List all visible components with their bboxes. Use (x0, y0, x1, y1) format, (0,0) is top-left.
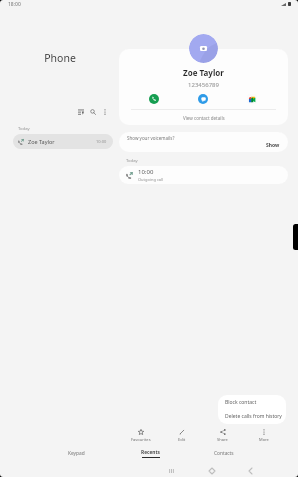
staticText: 18:00 (8, 1, 21, 8)
button[interactable]: Search (87, 106, 99, 118)
button[interactable]: Call (149, 94, 159, 104)
staticText: 10:00 (138, 168, 154, 176)
staticText: Outgoing call (138, 177, 164, 182)
staticText: Today (18, 126, 30, 132)
button[interactable]: More (243, 427, 284, 441)
button[interactable]: Back (241, 461, 260, 477)
button[interactable]: Contacts (187, 445, 260, 459)
button[interactable]: Zoe Taylor (13, 134, 113, 149)
button[interactable]: 10:00 (119, 166, 288, 184)
button[interactable]: Keypad (39, 445, 113, 459)
staticText: 10:00 (96, 139, 107, 144)
button[interactable]: More options (99, 106, 111, 118)
staticText: Today (126, 158, 138, 164)
button[interactable]: Video call (247, 94, 257, 104)
staticText: Block contact (225, 399, 257, 406)
staticText: Keypad (68, 450, 85, 457)
button[interactable]: Show (266, 142, 288, 152)
button[interactable]: Recents (113, 445, 187, 459)
staticText: Show your voicemails? (127, 135, 175, 141)
staticText: Contacts (214, 450, 234, 457)
staticText: 123456789 (119, 81, 288, 89)
staticText: Favourites (131, 437, 151, 441)
button[interactable]: Edit (161, 427, 202, 441)
button[interactable]: Block contact (218, 395, 286, 409)
button[interactable]: Delete calls from history (218, 409, 286, 423)
staticText: Edit (178, 437, 186, 441)
staticText: Recents (141, 449, 160, 456)
button[interactable]: View contact details (119, 110, 288, 125)
staticText: Share (217, 437, 228, 441)
button[interactable]: Share (202, 427, 243, 441)
button[interactable]: Favourites (120, 427, 161, 441)
staticText: Phone (1, 51, 119, 65)
staticText: Show (266, 142, 280, 149)
staticText: Zoe Taylor (28, 138, 55, 145)
button[interactable]: Home (202, 461, 221, 477)
staticText: Zoe Taylor (119, 67, 288, 78)
staticText: More (259, 437, 269, 441)
button[interactable]: Sort (75, 106, 87, 118)
button[interactable]: Recent apps (162, 461, 181, 477)
staticText: Delete calls from history (225, 413, 282, 420)
staticText: View contact details (183, 115, 225, 121)
button[interactable]: Message (198, 94, 208, 104)
